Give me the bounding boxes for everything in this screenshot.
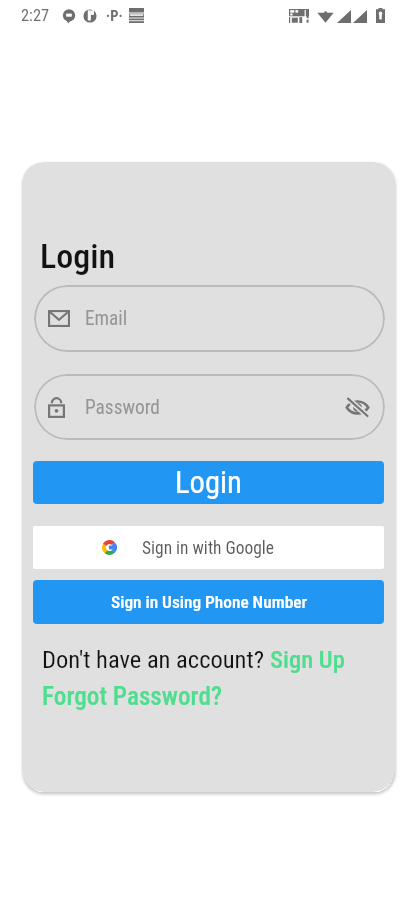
button[interactable]: Login — [33, 461, 384, 504]
button[interactable]: Sign in Using Phone Number — [33, 580, 384, 624]
button[interactable]: Sign in with Google — [33, 526, 384, 569]
staticText: Email — [85, 307, 128, 330]
staticText: Don't have an account? — [42, 645, 270, 674]
button[interactable]: Email — [34, 285, 385, 352]
button[interactable]: Forgot Password? — [42, 682, 222, 712]
staticText: 2:27 — [21, 6, 50, 25]
staticText: Login — [175, 465, 242, 501]
button[interactable]: Sign Up — [270, 645, 345, 674]
button[interactable]: Password — [34, 374, 385, 440]
staticText: ·P· — [106, 8, 123, 25]
button[interactable]: Toggle password visibility — [345, 374, 370, 440]
staticText: Password — [85, 396, 160, 419]
staticText: Sign in with Google — [142, 538, 275, 558]
staticText: Sign in Using Phone Number — [111, 592, 307, 612]
staticText: Login — [40, 236, 116, 276]
